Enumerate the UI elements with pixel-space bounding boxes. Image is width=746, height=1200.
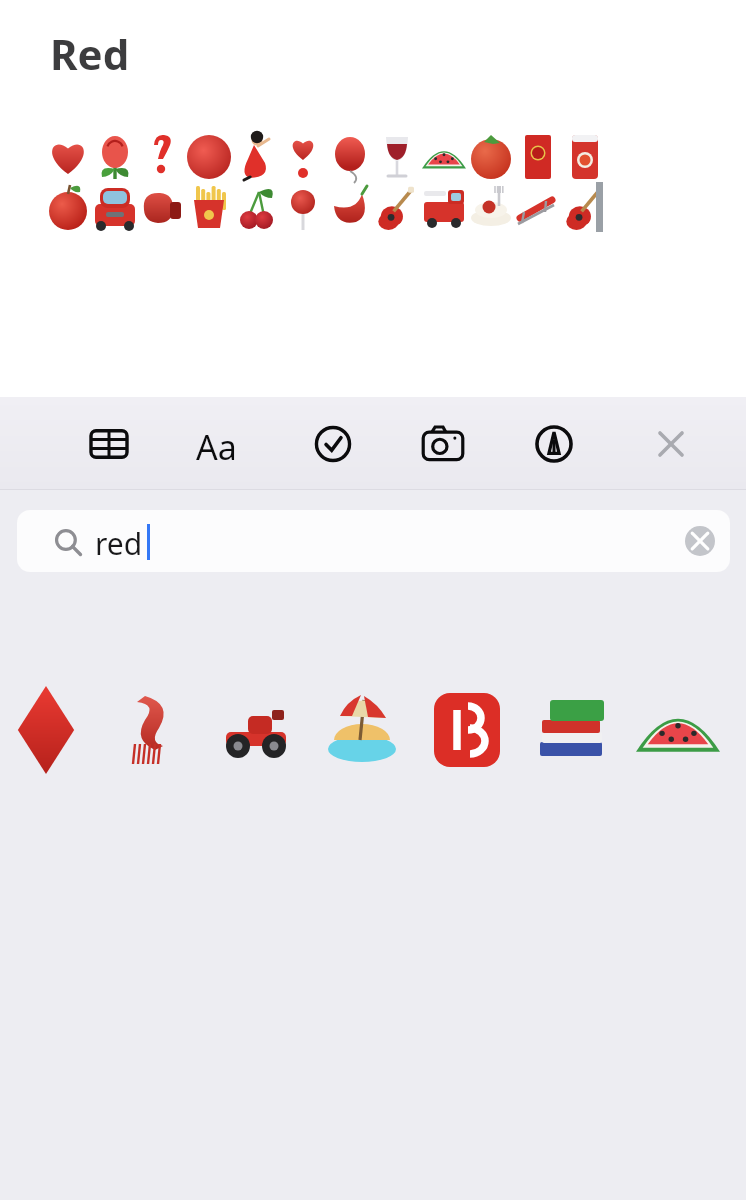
- button[interactable]: Emoji suggestion: [522, 680, 622, 780]
- button[interactable]: Emoji suggestion: [312, 680, 412, 780]
- button[interactable]: Table: [86, 421, 132, 467]
- button[interactable]: red: [17, 510, 730, 572]
- button[interactable]: Emoji suggestion: [0, 680, 96, 780]
- button[interactable]: Emoji suggestion: [101, 680, 201, 780]
- button[interactable]: Emoji suggestion: [417, 680, 517, 780]
- button[interactable]: Camera: [420, 421, 466, 467]
- button[interactable]: Close: [648, 421, 694, 467]
- button[interactable]: Text format: [200, 421, 246, 467]
- staticText: red: [95, 523, 143, 564]
- staticText: Aa: [196, 424, 237, 470]
- button[interactable]: Markup: [531, 421, 577, 467]
- button[interactable]: Clear text: [685, 526, 715, 556]
- button[interactable]: Emoji suggestion: [628, 680, 728, 780]
- button[interactable]: Checklist: [310, 421, 356, 467]
- staticText: Red: [50, 25, 130, 82]
- button[interactable]: Emoji suggestion: [206, 680, 306, 780]
